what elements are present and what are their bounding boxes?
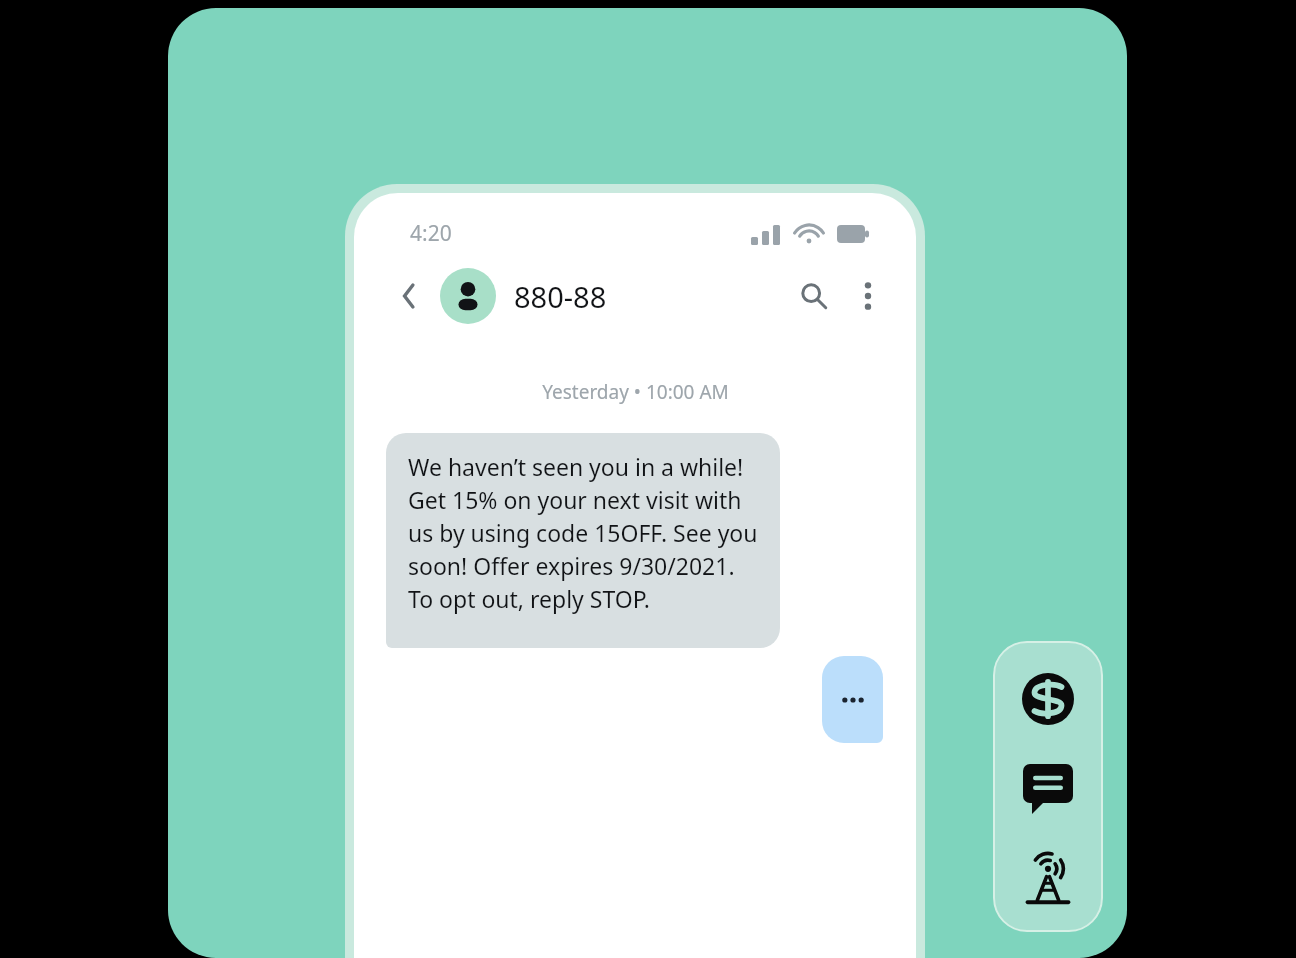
button[interactable]: Typing indicator xyxy=(822,656,883,743)
button[interactable]: Network tower xyxy=(1017,849,1079,911)
button[interactable]: Back xyxy=(392,279,426,313)
button[interactable]: Search xyxy=(792,274,836,318)
staticText: Yesterday • 10:00 AM xyxy=(542,379,729,405)
button[interactable]: More options xyxy=(846,274,890,318)
staticText: We haven’t seen you in a while! Get 15% … xyxy=(408,451,758,615)
staticText: 4:20 xyxy=(410,219,452,248)
button[interactable]: Payments xyxy=(1018,669,1078,729)
button[interactable]: Contact avatar xyxy=(440,268,496,324)
button[interactable]: Messaging xyxy=(1018,759,1078,819)
staticText: 880-88 xyxy=(514,277,607,316)
button[interactable]: We haven’t seen you in a while! Get 15% … xyxy=(386,433,780,648)
